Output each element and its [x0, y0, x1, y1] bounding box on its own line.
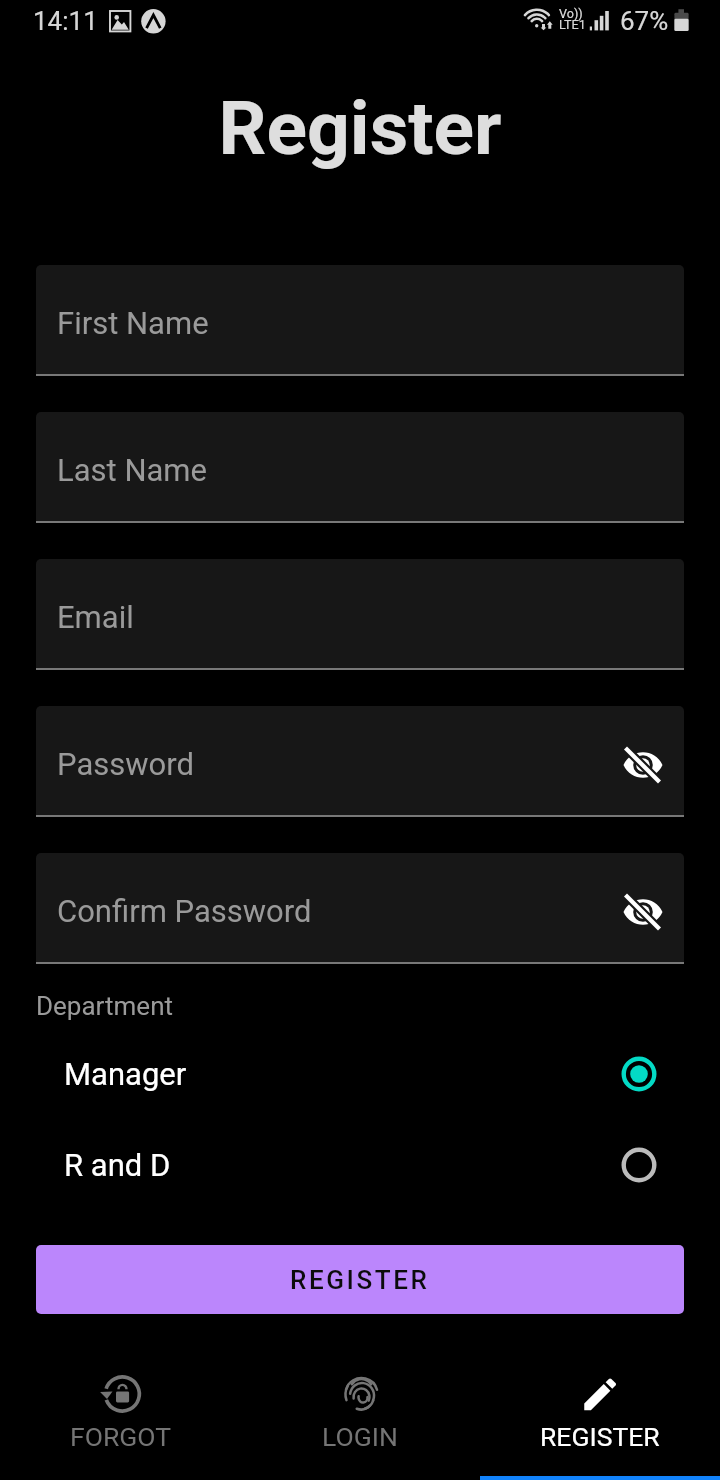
- button[interactable]: Email: [36, 559, 684, 670]
- staticText: 14:11: [33, 6, 98, 36]
- staticText: Password: [57, 746, 194, 782]
- staticText: Register: [0, 84, 720, 172]
- staticText: Email: [57, 599, 134, 635]
- staticText: Confirm Password: [57, 893, 312, 929]
- button[interactable]: Show password: [608, 730, 678, 800]
- other: Register: [578, 1372, 622, 1416]
- staticText: R and D: [64, 1147, 171, 1183]
- staticText: 67%: [620, 6, 669, 36]
- button[interactable]: REGISTER: [36, 1245, 684, 1314]
- button[interactable]: R and D: [36, 1119, 684, 1211]
- staticText: Department: [36, 991, 173, 1021]
- staticText: Vo)): [559, 6, 583, 21]
- button[interactable]: Confirm Password: [36, 853, 684, 964]
- button[interactable]: Password: [36, 706, 684, 817]
- staticText: FORGOT: [70, 1421, 171, 1452]
- button[interactable]: Show password: [608, 877, 678, 947]
- staticText: First Name: [57, 305, 209, 341]
- button[interactable]: Register: [480, 1366, 720, 1480]
- staticText: LOGIN: [322, 1421, 398, 1452]
- staticText: Manager: [64, 1056, 187, 1092]
- staticText: REGISTER: [540, 1421, 660, 1452]
- other: Forgot password: [98, 1372, 142, 1416]
- button[interactable]: Forgot password: [0, 1366, 240, 1480]
- button[interactable]: First Name: [36, 265, 684, 376]
- button[interactable]: Last Name: [36, 412, 684, 523]
- staticText: LTE1: [559, 17, 586, 32]
- staticText: REGISTER: [290, 1265, 430, 1295]
- staticText: Last Name: [57, 452, 207, 488]
- other: Login: [338, 1372, 382, 1416]
- button[interactable]: Manager: [36, 1028, 684, 1120]
- button[interactable]: Login: [240, 1366, 480, 1480]
